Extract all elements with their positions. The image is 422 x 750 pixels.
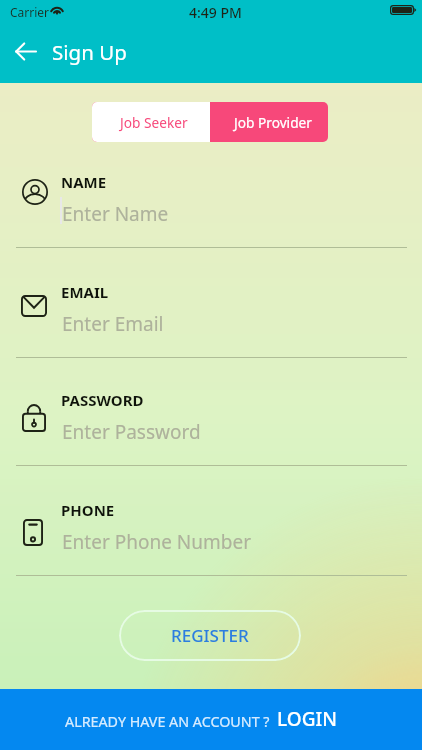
button[interactable]: ALREADY HAVE AN ACCOUNT ? bbox=[0, 689, 422, 750]
button[interactable]: Back bbox=[14, 39, 38, 63]
staticText: Enter Name bbox=[62, 201, 169, 227]
staticText: Enter Phone Number bbox=[62, 529, 251, 555]
staticText: EMAIL bbox=[61, 282, 109, 302]
staticText: ALREADY HAVE AN ACCOUNT ? bbox=[65, 712, 270, 731]
staticText: Enter Password bbox=[62, 419, 201, 445]
staticText: Carrier bbox=[10, 4, 50, 20]
staticText: Sign Up bbox=[52, 38, 127, 66]
staticText: Job Provider bbox=[234, 113, 312, 132]
button[interactable]: Job Provider bbox=[210, 102, 328, 142]
staticText: NAME bbox=[61, 172, 107, 192]
staticText: LOGIN bbox=[277, 706, 337, 732]
button[interactable]: PASSWORD bbox=[0, 387, 422, 466]
staticText: 4:49 PM bbox=[189, 3, 242, 22]
button[interactable]: REGISTER bbox=[119, 610, 301, 661]
button[interactable]: PHONE bbox=[0, 497, 422, 576]
staticText: PHONE bbox=[61, 500, 115, 520]
staticText: PASSWORD bbox=[61, 390, 144, 410]
staticText: Job Seeker bbox=[120, 113, 188, 132]
button[interactable]: EMAIL bbox=[0, 279, 422, 358]
staticText: Enter Email bbox=[62, 311, 164, 337]
button[interactable]: Job Seeker bbox=[92, 102, 210, 142]
staticText: REGISTER bbox=[171, 624, 249, 647]
button[interactable]: NAME bbox=[0, 169, 422, 248]
